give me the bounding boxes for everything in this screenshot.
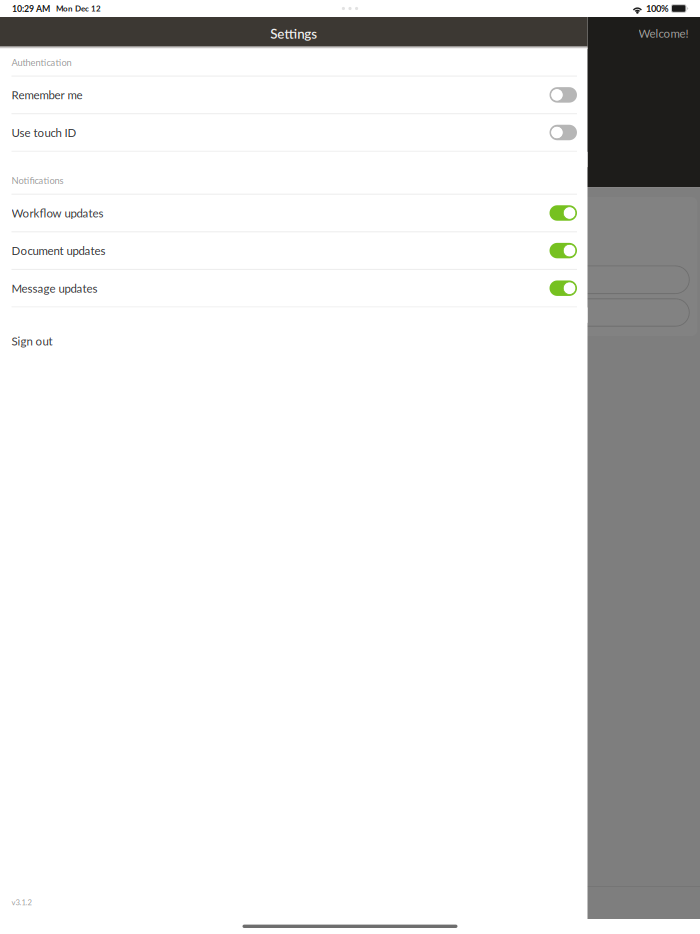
button[interactable]: Document updates	[0, 232, 587, 270]
staticText: Settings	[270, 26, 317, 42]
button[interactable]: Message updates	[0, 270, 587, 307]
staticText: Notifications	[11, 175, 63, 186]
button[interactable]: Remember me	[0, 77, 587, 114]
button[interactable]: Sign out	[0, 323, 587, 359]
staticText: Message updates	[11, 281, 97, 295]
staticText: Sign out	[11, 334, 52, 348]
staticText: Mon Dec 12	[56, 4, 101, 13]
staticText: Document updates	[11, 244, 105, 257]
button[interactable]: Use touch ID	[0, 114, 587, 152]
staticText: v3.1.2	[11, 898, 31, 907]
staticText: Use touch ID	[11, 126, 76, 139]
button[interactable]: Workflow updates	[0, 195, 587, 232]
staticText: Welcome!	[638, 26, 688, 40]
staticText: Workflow updates	[11, 206, 103, 220]
staticText: 100%	[646, 3, 669, 14]
staticText: 10:29 AM	[12, 3, 50, 14]
button[interactable]: Settings	[0, 17, 587, 46]
staticText: Authentication	[11, 57, 71, 68]
staticText: Remember me	[11, 88, 82, 102]
